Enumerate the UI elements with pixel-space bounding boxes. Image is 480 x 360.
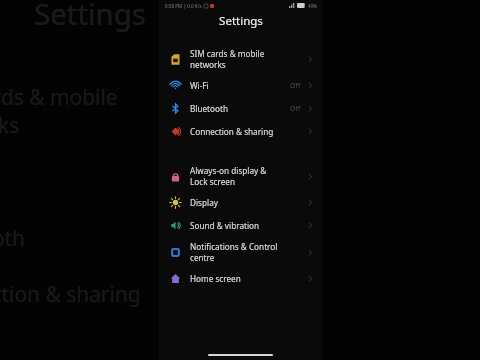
button[interactable]: Home screen xyxy=(159,267,322,290)
staticText: Sound & vibration xyxy=(190,220,260,231)
button[interactable]: Sound & vibration xyxy=(159,214,322,237)
button[interactable]: Bluetooth xyxy=(159,97,322,120)
staticText: Off xyxy=(290,81,301,91)
staticText: networks xyxy=(190,59,226,70)
button[interactable]: Connection & sharing xyxy=(159,120,322,143)
staticText: 6:58 PM | 0.0 K/s xyxy=(165,3,202,9)
staticText: networks xyxy=(0,111,20,139)
staticText: Settings xyxy=(34,0,146,34)
staticText: Connection & sharing xyxy=(0,280,141,308)
staticText: Notifications & Control xyxy=(190,241,278,252)
button[interactable]: SIM cards & mobile xyxy=(159,44,322,74)
staticText: Connection & sharing xyxy=(190,126,274,137)
staticText: SIM cards & mobile xyxy=(190,48,265,59)
staticText: centre xyxy=(190,252,215,263)
staticText: SIM cards & mobile xyxy=(0,83,118,111)
staticText: Wi-Fi xyxy=(190,80,209,91)
button[interactable]: Notifications & Control xyxy=(159,237,322,267)
staticText: Home screen xyxy=(190,273,241,284)
button[interactable]: Connection & sharing xyxy=(0,267,330,320)
staticText: Off xyxy=(250,226,277,250)
button[interactable]: Wi-Fi xyxy=(0,149,330,208)
button[interactable]: Wi-Fi xyxy=(159,74,322,97)
staticText: Always-on display & xyxy=(190,165,267,176)
staticText: Display xyxy=(190,197,218,208)
button[interactable]: Always-on display & xyxy=(159,161,322,191)
staticText: Settings xyxy=(219,13,263,29)
button[interactable]: Bluetooth xyxy=(0,208,330,267)
staticText: 40% xyxy=(308,3,317,9)
staticText: Off xyxy=(290,104,301,114)
staticText: Off xyxy=(250,167,277,191)
staticText: Bluetooth xyxy=(0,224,26,252)
staticText: Lock screen xyxy=(190,176,236,187)
staticText: Bluetooth xyxy=(190,103,228,114)
button[interactable]: SIM cards & mobile xyxy=(0,72,330,149)
button[interactable]: Display xyxy=(159,191,322,214)
